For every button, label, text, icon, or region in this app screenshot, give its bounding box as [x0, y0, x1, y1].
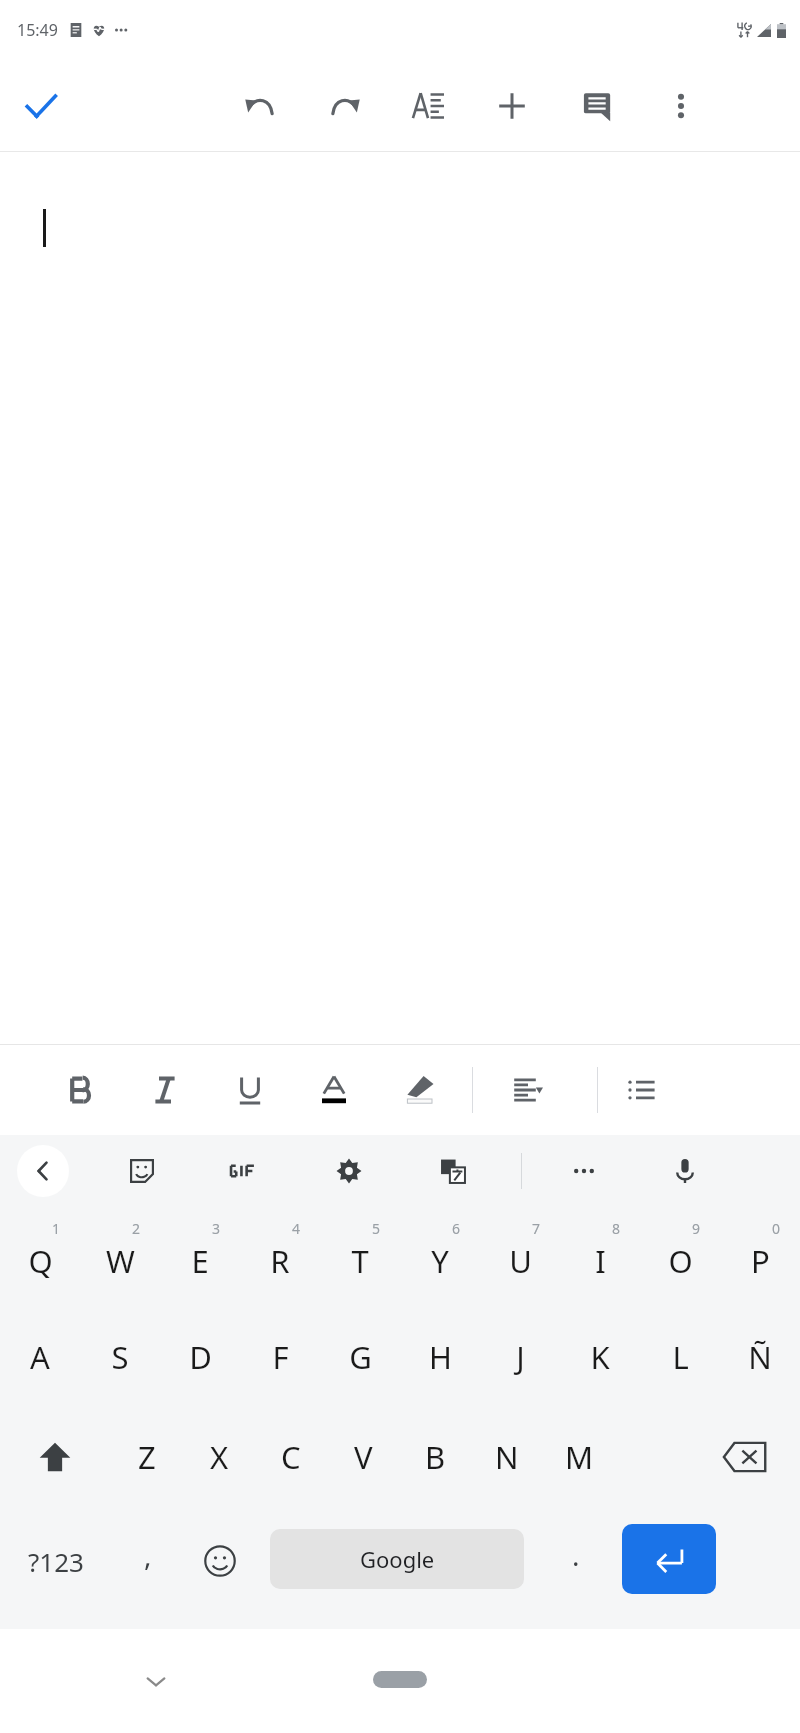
button[interactable]: Action: [399, 77, 457, 135]
staticText: N: [495, 1436, 519, 1478]
button[interactable]: Format: [614, 1062, 670, 1118]
button[interactable]: O: [640, 1207, 720, 1307]
staticText: I: [595, 1240, 606, 1282]
button[interactable]: Backspace: [690, 1407, 800, 1507]
staticText: ,: [144, 1536, 152, 1574]
staticText: G: [349, 1336, 372, 1378]
button[interactable]: Settings: [323, 1145, 375, 1197]
button[interactable]: Action: [231, 77, 289, 135]
staticText: Z: [138, 1436, 156, 1478]
button[interactable]: Home: [373, 1671, 427, 1688]
staticText: 6: [452, 1219, 461, 1238]
button[interactable]: R: [240, 1207, 320, 1307]
staticText: S: [111, 1336, 129, 1378]
button[interactable]: K: [560, 1307, 640, 1407]
button[interactable]: ,: [112, 1509, 184, 1613]
staticText: 2: [132, 1219, 141, 1238]
staticText: M: [565, 1436, 594, 1478]
button[interactable]: Action: [652, 77, 710, 135]
staticText: F: [272, 1336, 289, 1378]
staticText: B: [425, 1436, 446, 1478]
staticText: Ñ: [748, 1336, 772, 1378]
staticText: C: [281, 1436, 301, 1478]
button[interactable]: Translate: [427, 1145, 479, 1197]
button[interactable]: T: [320, 1207, 400, 1307]
button[interactable]: B: [399, 1407, 471, 1507]
button[interactable]: F: [240, 1307, 320, 1407]
staticText: O: [668, 1240, 693, 1282]
button[interactable]: Shift: [0, 1407, 110, 1507]
button[interactable]: .: [540, 1509, 612, 1613]
button[interactable]: C: [255, 1407, 327, 1507]
button[interactable]: Format: [52, 1062, 108, 1118]
button[interactable]: Action: [569, 77, 627, 135]
button[interactable]: Format: [500, 1062, 556, 1118]
staticText: P: [751, 1240, 770, 1282]
staticText: ?123: [28, 1544, 84, 1579]
button[interactable]: P: [720, 1207, 800, 1307]
button[interactable]: Format: [222, 1062, 278, 1118]
staticText: E: [191, 1240, 209, 1282]
button[interactable]: W: [80, 1207, 160, 1307]
button[interactable]: Hide keyboard: [128, 1653, 184, 1709]
button[interactable]: A: [0, 1307, 80, 1407]
staticText: U: [509, 1240, 532, 1282]
button[interactable]: Back: [17, 1145, 69, 1197]
staticText: Y: [431, 1240, 449, 1282]
staticText: A: [30, 1336, 50, 1378]
button[interactable]: Q: [0, 1207, 80, 1307]
staticText: Q: [28, 1240, 53, 1282]
button[interactable]: Google: [270, 1529, 524, 1589]
button[interactable]: Z: [111, 1407, 183, 1507]
button[interactable]: ?123: [0, 1509, 112, 1613]
staticText: 15:49: [17, 19, 58, 41]
button[interactable]: J: [480, 1307, 560, 1407]
button[interactable]: Format: [392, 1062, 448, 1118]
staticText: .: [572, 1536, 580, 1574]
button[interactable]: L: [640, 1307, 720, 1407]
button[interactable]: Action: [316, 77, 374, 135]
staticText: V: [354, 1436, 373, 1478]
button[interactable]: GIF: [217, 1145, 269, 1197]
staticText: J: [516, 1336, 525, 1378]
staticText: L: [672, 1336, 689, 1378]
button[interactable]: S: [80, 1307, 160, 1407]
button[interactable]: U: [480, 1207, 560, 1307]
staticText: 3: [212, 1219, 221, 1238]
button[interactable]: G: [320, 1307, 400, 1407]
button[interactable]: V: [327, 1407, 399, 1507]
button[interactable]: H: [400, 1307, 480, 1407]
button[interactable]: I: [560, 1207, 640, 1307]
button[interactable]: Stickers: [116, 1145, 168, 1197]
button[interactable]: X: [183, 1407, 255, 1507]
staticText: 0: [772, 1219, 781, 1238]
button[interactable]: Format: [306, 1062, 362, 1118]
button[interactable]: Action: [483, 77, 541, 135]
staticText: R: [270, 1240, 290, 1282]
button[interactable]: Emoji: [184, 1509, 256, 1613]
button[interactable]: Format: [137, 1062, 193, 1118]
staticText: 9: [692, 1219, 701, 1238]
staticText: 5: [372, 1219, 381, 1238]
staticText: T: [351, 1240, 369, 1282]
button[interactable]: Y: [400, 1207, 480, 1307]
staticText: 1: [52, 1219, 61, 1238]
staticText: 7: [532, 1219, 541, 1238]
button[interactable]: E: [160, 1207, 240, 1307]
staticText: 8: [612, 1219, 621, 1238]
button[interactable]: Ñ: [720, 1307, 800, 1407]
button[interactable]: M: [543, 1407, 615, 1507]
button[interactable]: Done: [12, 77, 70, 135]
staticText: K: [590, 1336, 610, 1378]
button[interactable]: D: [160, 1307, 240, 1407]
button[interactable]: Enter: [622, 1524, 716, 1594]
button[interactable]: N: [471, 1407, 543, 1507]
staticText: Google: [360, 1544, 435, 1574]
staticText: H: [429, 1336, 452, 1378]
staticText: X: [210, 1436, 229, 1478]
button[interactable]: More: [558, 1145, 610, 1197]
staticText: W: [106, 1240, 135, 1282]
button[interactable]: Voice input: [659, 1145, 711, 1197]
staticText: 4: [292, 1219, 301, 1238]
staticText: D: [189, 1336, 212, 1378]
